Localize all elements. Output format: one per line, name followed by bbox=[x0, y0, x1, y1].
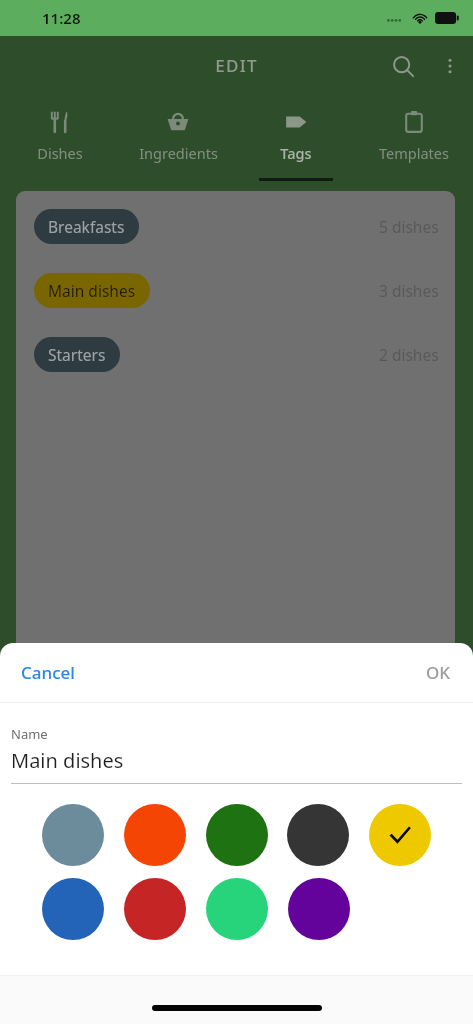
button[interactable]: Breakfasts bbox=[16, 204, 455, 249]
button[interactable]: Ingredients bbox=[119, 95, 237, 190]
staticText: Main dishes bbox=[11, 747, 124, 774]
button[interactable]: Main dishes bbox=[16, 268, 455, 313]
button[interactable]: Colour swatch bbox=[206, 804, 268, 866]
staticText: Ingredients bbox=[139, 143, 218, 163]
staticText: Name bbox=[11, 725, 48, 743]
staticText: EDIT bbox=[215, 54, 258, 77]
button[interactable]: Tags bbox=[237, 95, 355, 190]
staticText: OK bbox=[426, 661, 451, 684]
staticText: 11:28 bbox=[42, 8, 81, 28]
button[interactable]: Templates bbox=[355, 95, 473, 190]
button[interactable]: Colour swatch bbox=[287, 804, 349, 866]
staticText: Templates bbox=[379, 143, 449, 163]
button[interactable]: Colour swatch bbox=[124, 804, 186, 866]
button[interactable]: OK bbox=[408, 651, 473, 694]
button[interactable]: Colour swatch bbox=[42, 878, 104, 940]
staticText: Cancel bbox=[21, 661, 75, 684]
button[interactable]: Colour swatch bbox=[369, 804, 431, 866]
button[interactable]: Starters bbox=[16, 332, 455, 377]
staticText: 2 dishes bbox=[379, 344, 439, 365]
staticText: 3 dishes bbox=[379, 280, 439, 301]
button[interactable]: Colour swatch bbox=[288, 878, 350, 940]
button[interactable]: Dishes bbox=[0, 95, 119, 190]
staticText: Dishes bbox=[37, 143, 83, 163]
button[interactable]: More options bbox=[427, 43, 473, 89]
staticText: Breakfasts bbox=[48, 216, 125, 237]
button[interactable]: Search bbox=[379, 42, 427, 90]
button[interactable]: Colour swatch bbox=[42, 804, 104, 866]
button[interactable]: Cancel bbox=[0, 651, 93, 694]
staticText: Main dishes bbox=[48, 280, 136, 301]
button[interactable]: Colour swatch bbox=[206, 878, 268, 940]
button[interactable]: Colour swatch bbox=[124, 878, 186, 940]
staticText: Tags bbox=[280, 143, 312, 163]
staticText: 5 dishes bbox=[379, 216, 439, 237]
staticText: Starters bbox=[48, 344, 106, 365]
